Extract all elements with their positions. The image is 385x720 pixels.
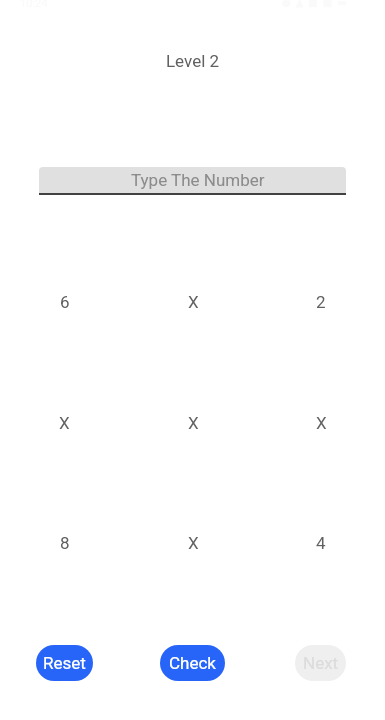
staticText: Next: [303, 653, 339, 673]
button[interactable]: Type The Number input field: [39, 167, 346, 193]
staticText: X: [188, 533, 199, 553]
staticText: 8: [60, 533, 70, 553]
staticText: 4: [316, 533, 326, 553]
staticText: Reset: [43, 653, 86, 673]
staticText: Type The Number: [131, 170, 265, 190]
button[interactable]: Next: [295, 645, 346, 681]
staticText: X: [188, 413, 199, 433]
staticText: 6: [60, 292, 70, 312]
staticText: X: [188, 292, 199, 312]
staticText: X: [59, 413, 70, 433]
button[interactable]: Check: [160, 645, 225, 681]
staticText: Level 2: [0, 51, 385, 71]
staticText: 2: [316, 292, 326, 312]
staticText: X: [316, 413, 327, 433]
staticText: Check: [169, 653, 216, 673]
button[interactable]: Reset: [36, 645, 93, 681]
